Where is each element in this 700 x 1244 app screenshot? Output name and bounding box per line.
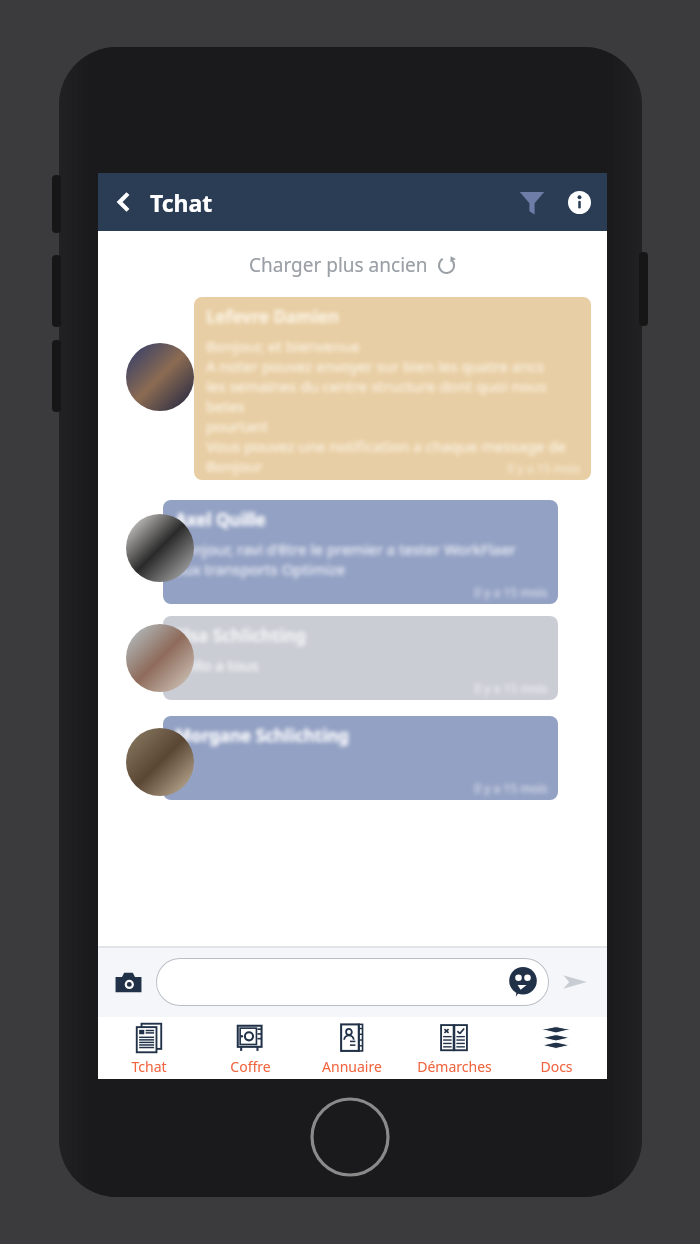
button[interactable]: Elsa Schlichting bbox=[98, 616, 607, 700]
staticText: Yo bbox=[175, 755, 192, 775]
button[interactable]: Tchat bbox=[98, 1017, 199, 1079]
button[interactable]: Send bbox=[549, 956, 601, 1008]
staticText: Vous pouvez une notification a chaque me… bbox=[206, 436, 566, 456]
button[interactable]: Filter bbox=[511, 181, 553, 223]
staticText: Il y a 15 mois bbox=[507, 460, 581, 476]
staticText: Charger plus ancien bbox=[249, 252, 428, 278]
staticText: A noter pouvez envoyer sur bien les quat… bbox=[206, 356, 544, 376]
button[interactable]: Docs bbox=[505, 1017, 607, 1079]
button[interactable]: Annuaire bbox=[301, 1017, 403, 1079]
staticText: Il y a 15 mois bbox=[474, 780, 548, 796]
button[interactable]: Emoji bbox=[156, 958, 549, 1006]
staticText: Lefevre Damien bbox=[206, 305, 340, 328]
staticText: Il y a 15 mois bbox=[474, 584, 548, 600]
staticText: Il y a 15 mois bbox=[474, 680, 548, 696]
staticText: Morgane Schlichting bbox=[175, 724, 350, 747]
staticText: Démarches bbox=[417, 1057, 492, 1076]
staticText: Hello a tous bbox=[175, 655, 259, 675]
staticText: Annuaire bbox=[322, 1057, 382, 1076]
staticText: pourtant bbox=[206, 416, 269, 436]
button[interactable]: Camera bbox=[104, 958, 152, 1006]
staticText: aux transports Optimize bbox=[175, 559, 346, 579]
button[interactable]: Morgane Schlichting bbox=[98, 716, 607, 800]
staticText: Elsa Schlichting bbox=[175, 624, 307, 647]
button[interactable]: Démarches bbox=[403, 1017, 505, 1079]
button[interactable]: Emoji bbox=[505, 964, 541, 1000]
button[interactable]: Back bbox=[102, 180, 146, 224]
staticText: Coffre bbox=[230, 1057, 271, 1076]
staticText: Tchat bbox=[150, 187, 213, 218]
staticText: Bonjour, et bienvenue bbox=[206, 336, 360, 356]
button[interactable]: Lefevre Damien bbox=[98, 297, 607, 480]
button[interactable]: Coffre bbox=[199, 1017, 301, 1079]
button[interactable]: Charger plus ancien bbox=[98, 243, 607, 287]
button[interactable]: Axel Quille bbox=[98, 500, 607, 604]
staticText: Tchat bbox=[131, 1057, 167, 1076]
staticText: Docs bbox=[540, 1057, 573, 1076]
staticText: Axel Quille bbox=[175, 508, 266, 531]
staticText: Bonjour bbox=[206, 456, 263, 476]
staticText: les semaines du centre structure dont qu… bbox=[206, 376, 579, 416]
staticText: Bonjour, ravi d'être le premier a tester… bbox=[175, 539, 516, 559]
button[interactable]: Information bbox=[559, 182, 599, 222]
